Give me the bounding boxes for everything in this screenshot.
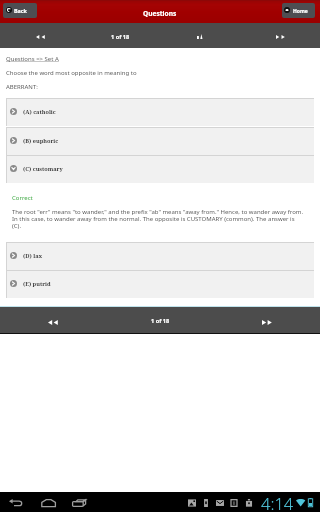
button[interactable]: (E) putrid bbox=[6, 270, 314, 298]
button[interactable]: Change text size bbox=[160, 24, 240, 49]
button[interactable]: Previous set bbox=[0, 24, 80, 49]
staticText: Home bbox=[293, 8, 308, 15]
button[interactable]: Back bbox=[1, 492, 31, 512]
staticText: 1 of 18 bbox=[111, 33, 130, 41]
button[interactable]: Next set bbox=[240, 24, 320, 49]
button[interactable]: Back bbox=[3, 3, 37, 18]
staticText: Choose the word most opposite in meaning… bbox=[6, 69, 137, 77]
button[interactable]: (C) customary bbox=[6, 155, 314, 183]
button[interactable]: (A) catholic bbox=[6, 98, 314, 126]
staticText: Questions bbox=[143, 9, 177, 18]
button[interactable]: Home bbox=[34, 492, 62, 512]
button[interactable]: Questions => Set A bbox=[6, 55, 59, 63]
staticText: (D) lax bbox=[23, 252, 43, 260]
staticText: ABERRANT: bbox=[6, 83, 38, 91]
staticText: 4:14 bbox=[261, 492, 294, 512]
button[interactable]: Home bbox=[282, 3, 315, 18]
button[interactable]: (D) lax bbox=[6, 242, 314, 270]
staticText: (E) putrid bbox=[23, 280, 51, 288]
staticText: (C) customary bbox=[23, 165, 63, 173]
button[interactable]: Recent apps bbox=[65, 492, 93, 512]
button[interactable]: Previous question bbox=[0, 309, 106, 335]
button[interactable]: Next question bbox=[214, 309, 320, 335]
staticText: (B) euphoric bbox=[23, 137, 59, 145]
staticText: The root "err" means "to wander," and th… bbox=[12, 208, 305, 230]
staticText: Back bbox=[14, 7, 27, 14]
staticText: 1 of 18 bbox=[151, 317, 170, 325]
staticText: (A) catholic bbox=[23, 108, 56, 116]
button[interactable]: (B) euphoric bbox=[6, 127, 314, 155]
staticText: Correct bbox=[12, 194, 33, 202]
